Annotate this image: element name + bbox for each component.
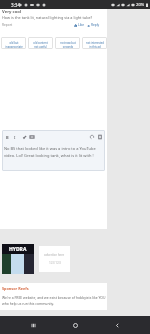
button[interactable]: Recents bbox=[24, 316, 42, 334]
staticText: B bbox=[6, 135, 9, 140]
staticText: not interested in this ad bbox=[86, 41, 104, 48]
staticText: advertise here bbox=[44, 253, 65, 257]
other: Preview bbox=[98, 135, 102, 139]
other: Like bbox=[74, 24, 77, 27]
button[interactable]: Back bbox=[108, 316, 126, 334]
button[interactable]: old but inappropriate bbox=[1, 37, 26, 49]
other: Insert image bbox=[30, 135, 34, 139]
staticText: We're a FREE website, and we exist becau… bbox=[2, 295, 106, 306]
button[interactable]: B bbox=[5, 135, 10, 140]
staticText: old content not useful bbox=[33, 41, 48, 48]
other: Reply bbox=[87, 24, 90, 27]
button[interactable]: I bbox=[13, 135, 17, 140]
staticText: No BS that looked like it was a intro to… bbox=[4, 146, 104, 158]
staticText: old but inappropriate bbox=[5, 41, 23, 48]
staticText: not now but seconds bbox=[60, 41, 76, 48]
staticText: Like bbox=[78, 23, 84, 27]
staticText: Report bbox=[2, 23, 13, 27]
staticText: 3:34 bbox=[11, 2, 21, 8]
staticText: Sponsor Reefs bbox=[2, 286, 29, 291]
staticText: Reply bbox=[91, 23, 100, 27]
button[interactable]: Report bbox=[2, 23, 13, 27]
button[interactable]: Reply bbox=[87, 23, 100, 27]
button[interactable]: advertise here bbox=[39, 246, 70, 272]
staticText: Very cool bbox=[2, 9, 22, 15]
button[interactable]: Like bbox=[74, 23, 84, 27]
staticText: HYDRA bbox=[9, 246, 27, 253]
other: Undo bbox=[90, 135, 94, 139]
staticText: How is the tank lit, natural lighting vi… bbox=[2, 15, 93, 20]
button[interactable]: not now but seconds bbox=[55, 37, 80, 49]
button[interactable]: old content not useful bbox=[28, 37, 53, 49]
staticText: I bbox=[14, 135, 16, 140]
staticText: 123 123 bbox=[49, 261, 61, 265]
button[interactable]: Home bbox=[66, 316, 84, 334]
button[interactable]: not interested in this ad bbox=[82, 37, 107, 49]
staticText: 20% bbox=[136, 2, 145, 8]
button[interactable]: HYDRA bbox=[2, 244, 34, 274]
other: Insert link bbox=[23, 135, 27, 139]
